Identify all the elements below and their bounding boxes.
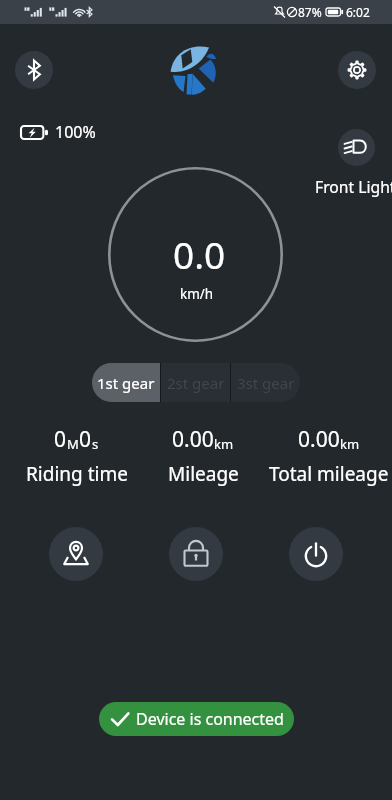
button[interactable]: 3st gear (231, 363, 300, 402)
staticText: Mileage (168, 461, 239, 487)
staticText: 6:02 (346, 4, 370, 20)
button[interactable]: Logo (169, 42, 222, 95)
staticText: 2st gear (167, 373, 225, 393)
button[interactable]: Bluetooth (15, 51, 53, 89)
button[interactable]: 0.00 (266, 425, 392, 487)
button[interactable]: Device is connected (99, 702, 294, 736)
staticText: Riding time (26, 461, 128, 487)
staticText: 0.0 (173, 229, 226, 279)
staticText: Front Light (315, 176, 392, 197)
staticText: 0 (79, 425, 92, 454)
button[interactable]: Lock (169, 527, 223, 581)
staticText: 0.00 (298, 425, 340, 454)
button[interactable]: 1st gear (92, 363, 160, 402)
button[interactable]: Power (289, 527, 343, 581)
button[interactable]: Front Light (338, 129, 375, 166)
staticText: 3st gear (237, 373, 295, 393)
staticText: 0 (54, 425, 67, 454)
staticText: M (67, 435, 79, 453)
staticText: km/h (180, 285, 214, 303)
button[interactable]: Settings (338, 51, 376, 89)
button[interactable]: 0.00 (140, 425, 266, 487)
staticText: Total mileage (269, 461, 389, 487)
button[interactable]: 2st gear (161, 363, 230, 402)
staticText: km (214, 435, 234, 453)
staticText: 87% (298, 4, 322, 20)
staticText: km (340, 435, 360, 453)
staticText: 0.00 (172, 425, 214, 454)
button[interactable]: Location (49, 527, 103, 581)
button[interactable]: 0 (13, 425, 140, 487)
staticText: 100% (55, 121, 96, 143)
staticText: s (92, 435, 99, 453)
staticText: 1st gear (97, 373, 155, 393)
staticText: Device is connected (136, 708, 284, 730)
